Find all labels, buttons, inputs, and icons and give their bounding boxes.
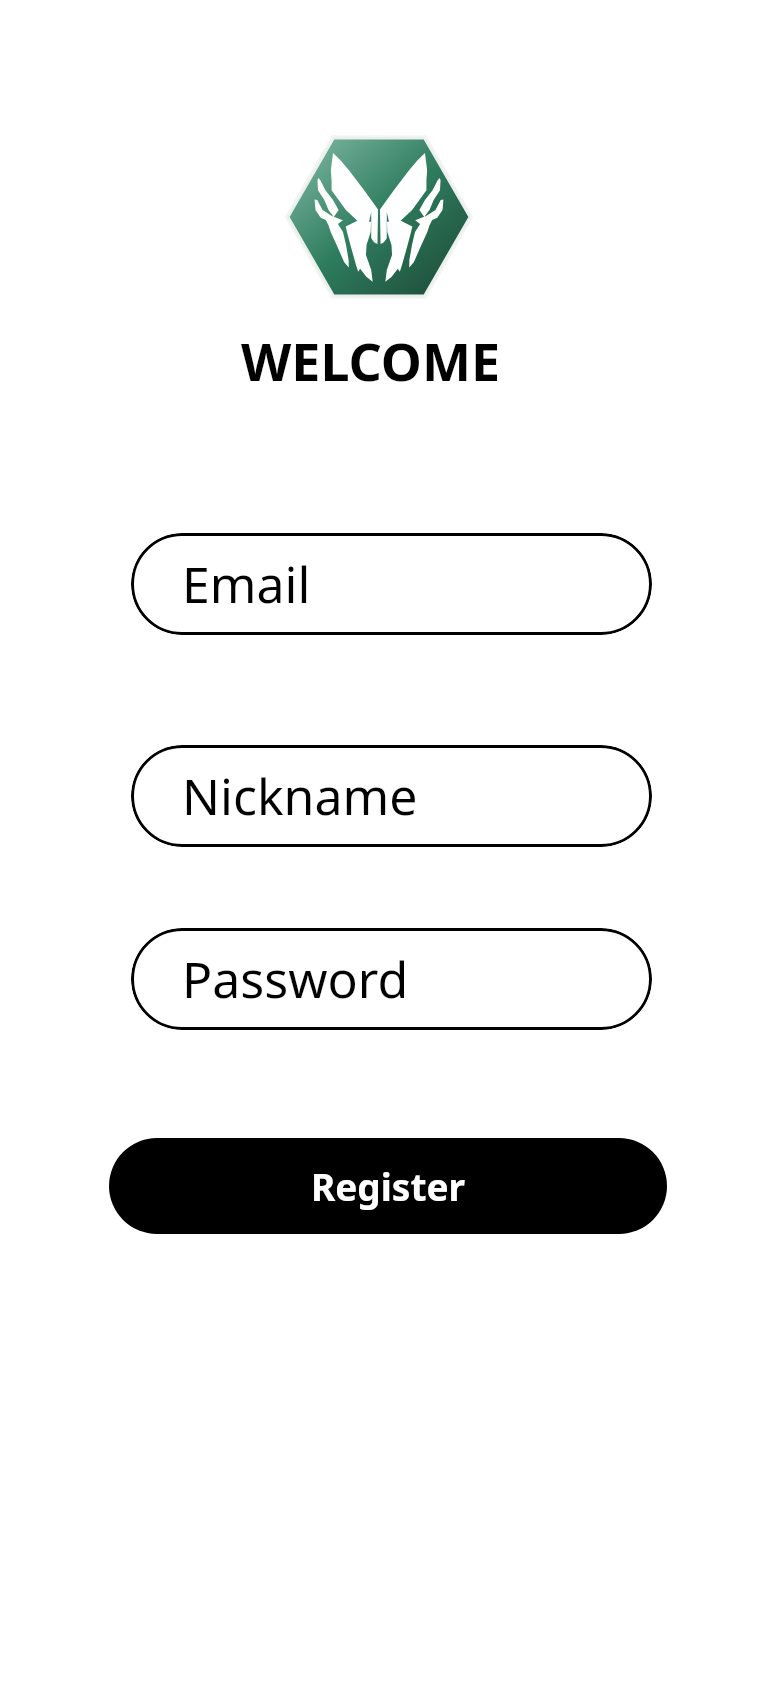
staticText: WELCOME bbox=[241, 325, 501, 395]
staticText: Nickname bbox=[182, 762, 418, 830]
button[interactable]: Register bbox=[109, 1138, 667, 1234]
staticText: Register bbox=[311, 1161, 466, 1211]
button[interactable]: Email bbox=[131, 533, 652, 635]
staticText: Password bbox=[182, 945, 409, 1013]
staticText: Email bbox=[182, 550, 311, 618]
button[interactable]: Password bbox=[131, 928, 652, 1030]
button[interactable]: Nickname bbox=[131, 745, 652, 847]
